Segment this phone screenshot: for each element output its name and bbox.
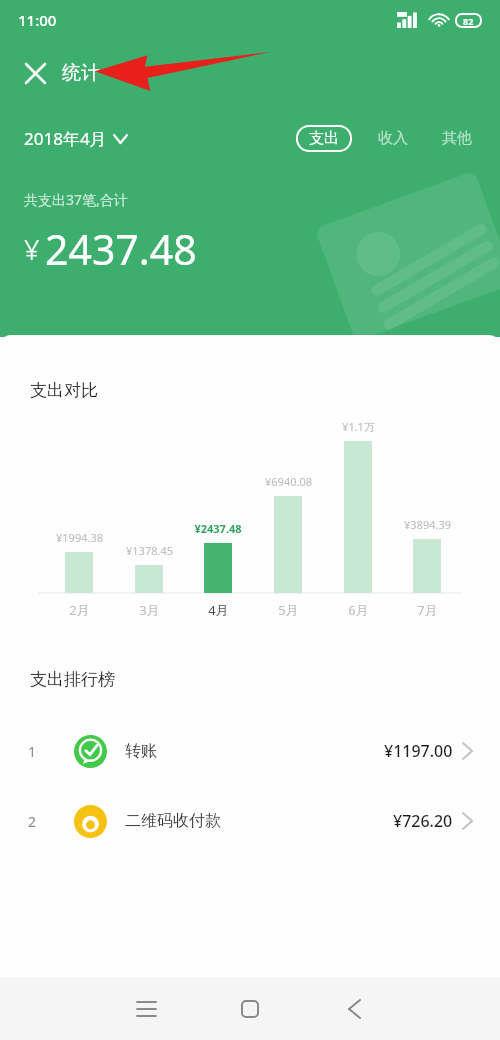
button[interactable]: 其他	[438, 125, 476, 152]
staticText: ¥3894.39	[404, 517, 451, 532]
button[interactable]: Home	[219, 978, 281, 1040]
staticText: 5月	[278, 601, 299, 619]
staticText: ¥2437.48	[194, 521, 242, 536]
staticText: 统计	[62, 61, 100, 85]
button[interactable]: Recents	[115, 978, 177, 1040]
staticText: 4月	[208, 601, 229, 619]
staticText: ¥1197.00	[384, 740, 453, 762]
staticText: 3月	[139, 601, 160, 619]
button[interactable]: 支出	[296, 125, 352, 152]
staticText: 共支出37笔,合计	[24, 190, 128, 209]
button[interactable]: 收入	[374, 125, 412, 152]
staticText: 二维码收付款	[125, 811, 221, 831]
staticText: 6月	[348, 601, 369, 619]
staticText: 转账	[125, 741, 157, 761]
staticText: ¥1.1万	[342, 419, 375, 434]
staticText: 2	[28, 812, 37, 831]
staticText: 支出对比	[30, 380, 98, 401]
button[interactable]: 2018年4月	[24, 127, 127, 150]
staticText: 2月	[69, 601, 90, 619]
staticText: ¥6940.08	[265, 474, 312, 489]
staticText: 2437.48	[45, 221, 197, 277]
button[interactable]: Close	[14, 52, 56, 94]
button[interactable]: 1	[0, 716, 500, 786]
staticText: 1	[28, 742, 37, 761]
staticText: ¥	[24, 231, 40, 268]
staticText: 82	[463, 15, 474, 27]
button[interactable]: Back	[323, 978, 385, 1040]
staticText: 7月	[417, 601, 438, 619]
button[interactable]: 2	[0, 786, 500, 856]
staticText: ¥1994.38	[56, 530, 103, 545]
staticText: ¥726.20	[393, 810, 453, 832]
staticText: 支出	[309, 129, 339, 148]
staticText: 2018年4月	[24, 127, 107, 150]
staticText: 11:00	[18, 10, 57, 30]
staticText: 其他	[442, 129, 472, 148]
staticText: 支出排行榜	[30, 669, 115, 690]
staticText: 收入	[378, 129, 408, 148]
staticText: ¥1378.45	[126, 543, 173, 558]
